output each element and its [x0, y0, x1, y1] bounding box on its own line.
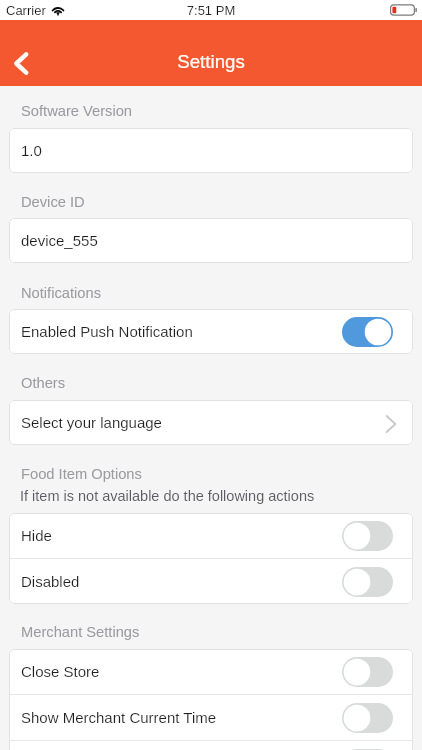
button[interactable]: Hide: [9, 513, 413, 558]
button[interactable]: Accept Online Orders: [9, 741, 413, 750]
staticText: 1.0: [21, 142, 42, 159]
button[interactable]: Back: [0, 40, 44, 86]
staticText: Disabled: [21, 573, 342, 590]
staticText: device_555: [21, 232, 98, 249]
staticText: Hide: [21, 527, 342, 544]
button[interactable]: Close Store: [9, 649, 413, 694]
staticText: Show Merchant Current Time: [21, 709, 342, 726]
staticText: Food Item Options: [21, 466, 142, 482]
staticText: Select your language: [21, 414, 386, 431]
button[interactable]: Enabled Push Notification: [9, 309, 413, 354]
button[interactable]: Select your language: [9, 400, 413, 445]
staticText: Close Store: [21, 663, 342, 680]
staticText: 7:51 PM: [0, 3, 422, 18]
staticText: Settings: [0, 51, 422, 72]
staticText: Others: [21, 375, 66, 391]
staticText: Software Version: [21, 103, 133, 119]
button[interactable]: Show Merchant Current Time: [9, 695, 413, 740]
staticText: Enabled Push Notification: [21, 323, 342, 340]
staticText: Device ID: [21, 194, 85, 210]
staticText: Notifications: [21, 285, 101, 301]
staticText: Carrier: [6, 3, 46, 18]
staticText: Merchant Settings: [21, 624, 140, 640]
staticText: If item is not available do the followin…: [20, 488, 315, 504]
button[interactable]: Disabled: [9, 559, 413, 604]
